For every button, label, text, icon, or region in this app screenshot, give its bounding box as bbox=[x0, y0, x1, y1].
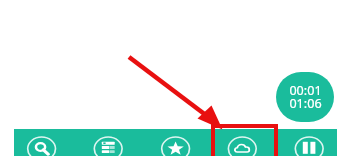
button[interactable]: Search bbox=[27, 129, 57, 156]
staticText: 00:01 01:06 bbox=[289, 82, 322, 112]
button[interactable]: Library bbox=[93, 129, 123, 156]
button[interactable]: Pause bbox=[294, 129, 324, 156]
button[interactable]: Cloud bbox=[227, 129, 257, 156]
button[interactable]: 00:01 01:06 bbox=[276, 72, 334, 122]
button[interactable]: Favourites bbox=[161, 129, 191, 156]
